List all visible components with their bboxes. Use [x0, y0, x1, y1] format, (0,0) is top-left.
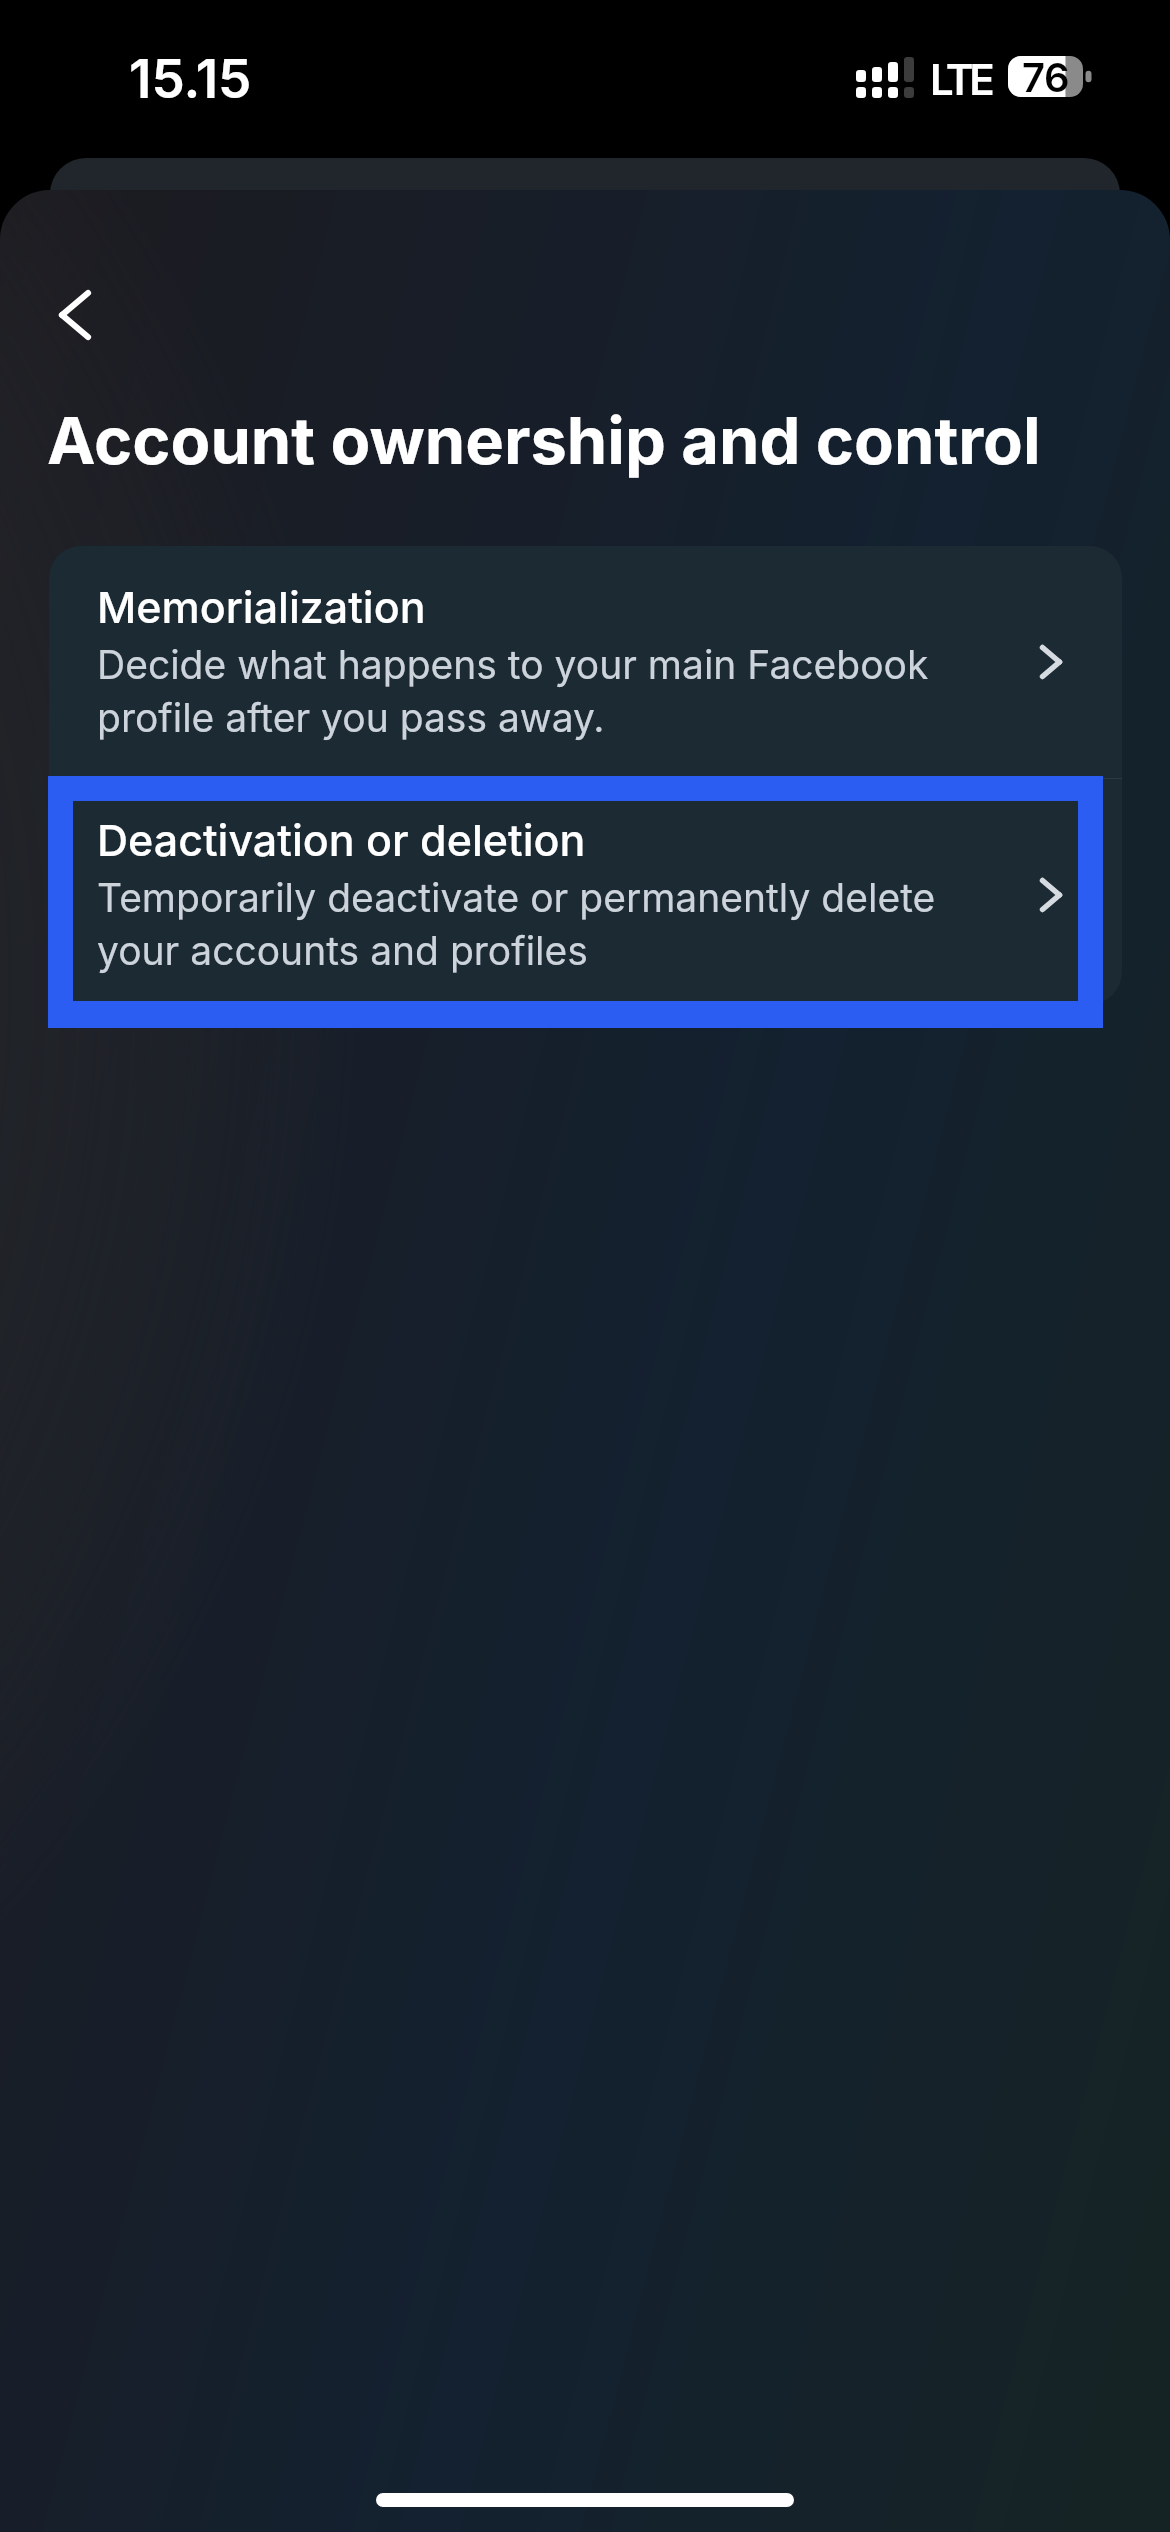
- button[interactable]: Back: [14, 263, 94, 343]
- button[interactable]: Deactivation or deletion: [48, 776, 1103, 1028]
- staticText: Deactivation or deletion: [97, 812, 586, 867]
- staticText: 76: [1022, 53, 1070, 101]
- staticText: Account ownership and control: [47, 400, 1041, 480]
- staticText: Decide what happens to your main Faceboo…: [97, 637, 929, 743]
- button[interactable]: Memorialization: [49, 546, 1122, 778]
- staticText: LTE: [930, 54, 991, 105]
- staticText: Temporarily deactivate or permanently de…: [97, 870, 936, 976]
- staticText: 15.15: [129, 47, 252, 111]
- staticText: Memorialization: [97, 579, 426, 634]
